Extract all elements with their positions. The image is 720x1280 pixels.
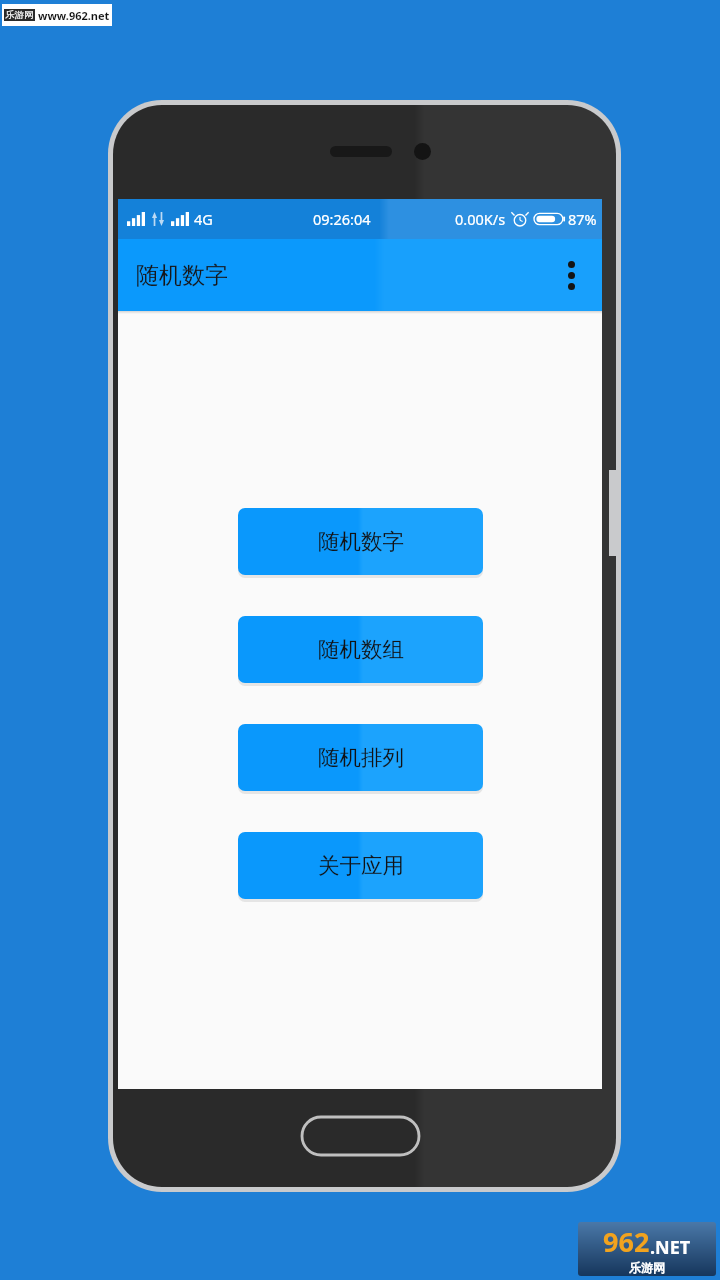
staticText: 随机数字 (318, 528, 404, 555)
button[interactable]: 随机数字 (136, 261, 228, 290)
staticText: 乐游网 (629, 1260, 665, 1275)
staticText: 0.00K/s (455, 209, 506, 229)
button[interactable]: 关于应用 (238, 832, 483, 899)
staticText: 4G (194, 209, 213, 229)
staticText: www.962.net (38, 8, 110, 23)
staticText: 87% (568, 209, 597, 229)
button[interactable]: 随机数组 (238, 616, 483, 683)
staticText: 乐游网 (5, 9, 34, 21)
staticText: 随机数字 (136, 261, 228, 290)
staticText: 09:26:04 (313, 209, 371, 229)
button[interactable]: More options (547, 244, 595, 306)
button[interactable]: 随机排列 (238, 724, 483, 791)
staticText: .NET (650, 1235, 691, 1260)
staticText: 962 (603, 1223, 650, 1260)
button[interactable]: 随机数字 (238, 508, 483, 575)
staticText: 关于应用 (318, 852, 404, 879)
staticText: 随机数组 (318, 636, 404, 663)
staticText: 随机排列 (318, 744, 404, 771)
